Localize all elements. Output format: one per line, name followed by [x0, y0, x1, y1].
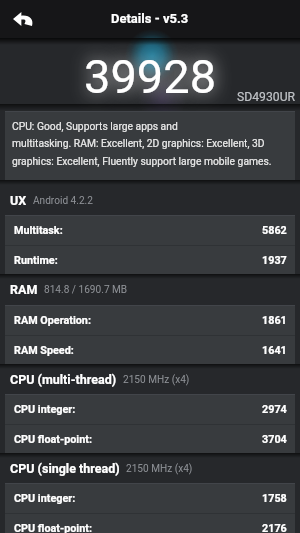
button[interactable]: CPU integer: — [5, 484, 295, 513]
staticText: 1937 — [262, 254, 287, 267]
staticText: Android 4.2.2 — [33, 195, 93, 207]
staticText: Details - v5.3 — [111, 11, 189, 26]
button[interactable]: CPU float-point: — [5, 425, 295, 453]
button[interactable]: CPU integer: — [5, 395, 295, 424]
button[interactable]: RAM Operation: — [5, 306, 295, 335]
button[interactable]: Back — [0, 0, 44, 38]
staticText: 2176 — [262, 522, 287, 533]
staticText: SD4930UR — [237, 90, 296, 104]
staticText: CPU float-point: — [14, 433, 92, 446]
staticText: CPU float-point: — [14, 522, 92, 533]
staticText: 1641 — [262, 344, 287, 357]
staticText: 814.8 / 1690.7 MB — [44, 284, 128, 296]
staticText: RAM — [10, 282, 38, 297]
staticText: CPU (single thread) — [10, 461, 120, 476]
staticText: CPU integer: — [14, 403, 76, 416]
staticText: 2974 — [262, 403, 287, 416]
staticText: 2150 MHz (x4) — [123, 374, 190, 386]
button[interactable]: Runtime: — [5, 246, 295, 274]
staticText: 39928 — [84, 49, 217, 104]
staticText: UX — [10, 193, 27, 208]
staticText: CPU: Good, Supports large apps and multi… — [12, 120, 272, 168]
staticText: 2150 MHz (x4) — [126, 463, 193, 475]
staticText: RAM Operation: — [14, 314, 91, 327]
staticText: CPU (multi-thread) — [10, 372, 117, 387]
staticText: 1758 — [262, 492, 287, 505]
staticText: 1861 — [262, 314, 287, 327]
button[interactable]: CPU float-point: — [5, 514, 295, 533]
staticText: Runtime: — [14, 254, 58, 267]
staticText: 5862 — [262, 224, 287, 237]
staticText: CPU integer: — [14, 492, 76, 505]
staticText: RAM Speed: — [14, 344, 74, 357]
button[interactable]: Multitask: — [5, 216, 295, 245]
staticText: 39928 — [84, 49, 217, 104]
button[interactable]: RAM Speed: — [5, 336, 295, 364]
staticText: 3704 — [262, 433, 287, 446]
staticText: Multitask: — [14, 224, 63, 237]
